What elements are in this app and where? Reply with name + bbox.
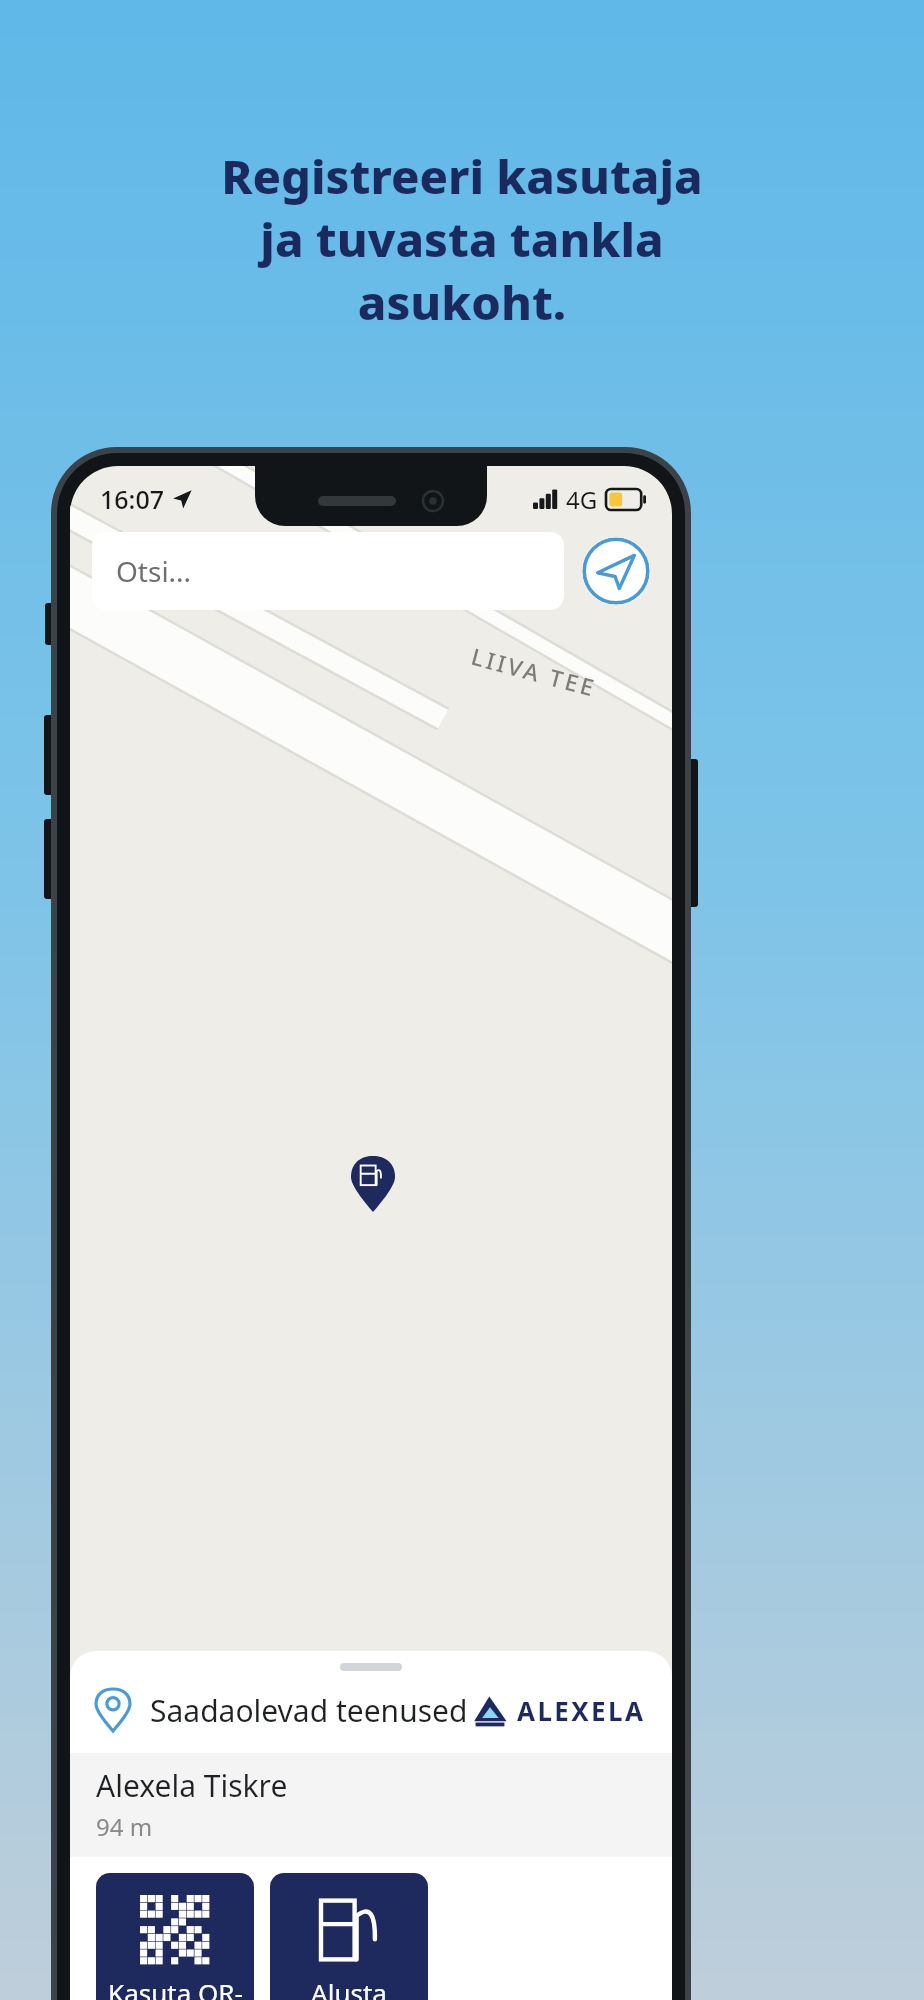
staticText: 94 m [96, 1810, 153, 1843]
staticText: Kasuta QR- [108, 1975, 243, 2000]
button[interactable]: Alexela Tiskre [70, 1753, 672, 1857]
staticText: Otsi... [116, 552, 192, 590]
staticText: 4G [566, 483, 598, 516]
staticText: ALEXELA [517, 1693, 646, 1728]
staticText: Registreeri kasutaja ja tuvasta tankla a… [221, 144, 703, 334]
button[interactable]: Otsi... [92, 532, 564, 610]
button[interactable]: Kasuta QR- [96, 1873, 254, 2000]
staticText: 16:07 [100, 482, 165, 516]
staticText: Alusta [311, 1975, 387, 2000]
button[interactable]: Saadaolevad teenused [70, 1671, 672, 1753]
button[interactable]: Alusta [270, 1873, 428, 2000]
staticText: Saadaolevad teenused [150, 1690, 468, 1731]
button[interactable]: Fuel station [351, 1156, 395, 1212]
button[interactable]: Locate me [582, 537, 650, 605]
staticText: Alexela Tiskre [96, 1765, 288, 1806]
staticText: LIIVA TEE [468, 640, 601, 703]
